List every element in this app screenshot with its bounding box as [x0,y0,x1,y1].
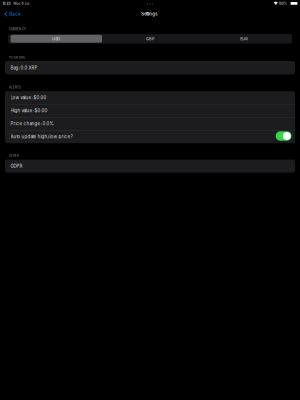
staticText: YOUR BAG [9,55,25,59]
staticText: Low value: $0.00 [10,95,46,100]
staticText: Auto update high/low price? [10,134,72,139]
staticText: Mon 8 Jul [14,2,30,6]
staticText: OTHER [9,153,19,157]
button[interactable]: GBP [103,34,197,44]
button[interactable]: EUR [197,34,291,44]
staticText: High value: $0.00 [10,108,47,113]
button[interactable]: GDPR [0,0,300,400]
staticText: Back [9,11,21,17]
staticText: USD [52,36,60,41]
staticText: CURRENCY [9,27,26,31]
staticText: EUR [240,36,247,41]
staticText: Bag: 0.0 XRP [10,65,37,70]
staticText: 12:23 [2,2,10,6]
staticText: Price change: 0.0% [10,121,53,126]
staticText: GDPR [10,164,22,169]
staticText: ALERTS [9,85,21,89]
button[interactable]: Back [4,8,24,19]
button[interactable] [276,131,291,141]
button[interactable]: Bag: 0.0 XRP [0,0,300,400]
staticText: GBP [146,36,154,41]
staticText: Settings [141,11,157,16]
button[interactable]: USD [9,34,103,44]
staticText: 100% [279,2,287,6]
